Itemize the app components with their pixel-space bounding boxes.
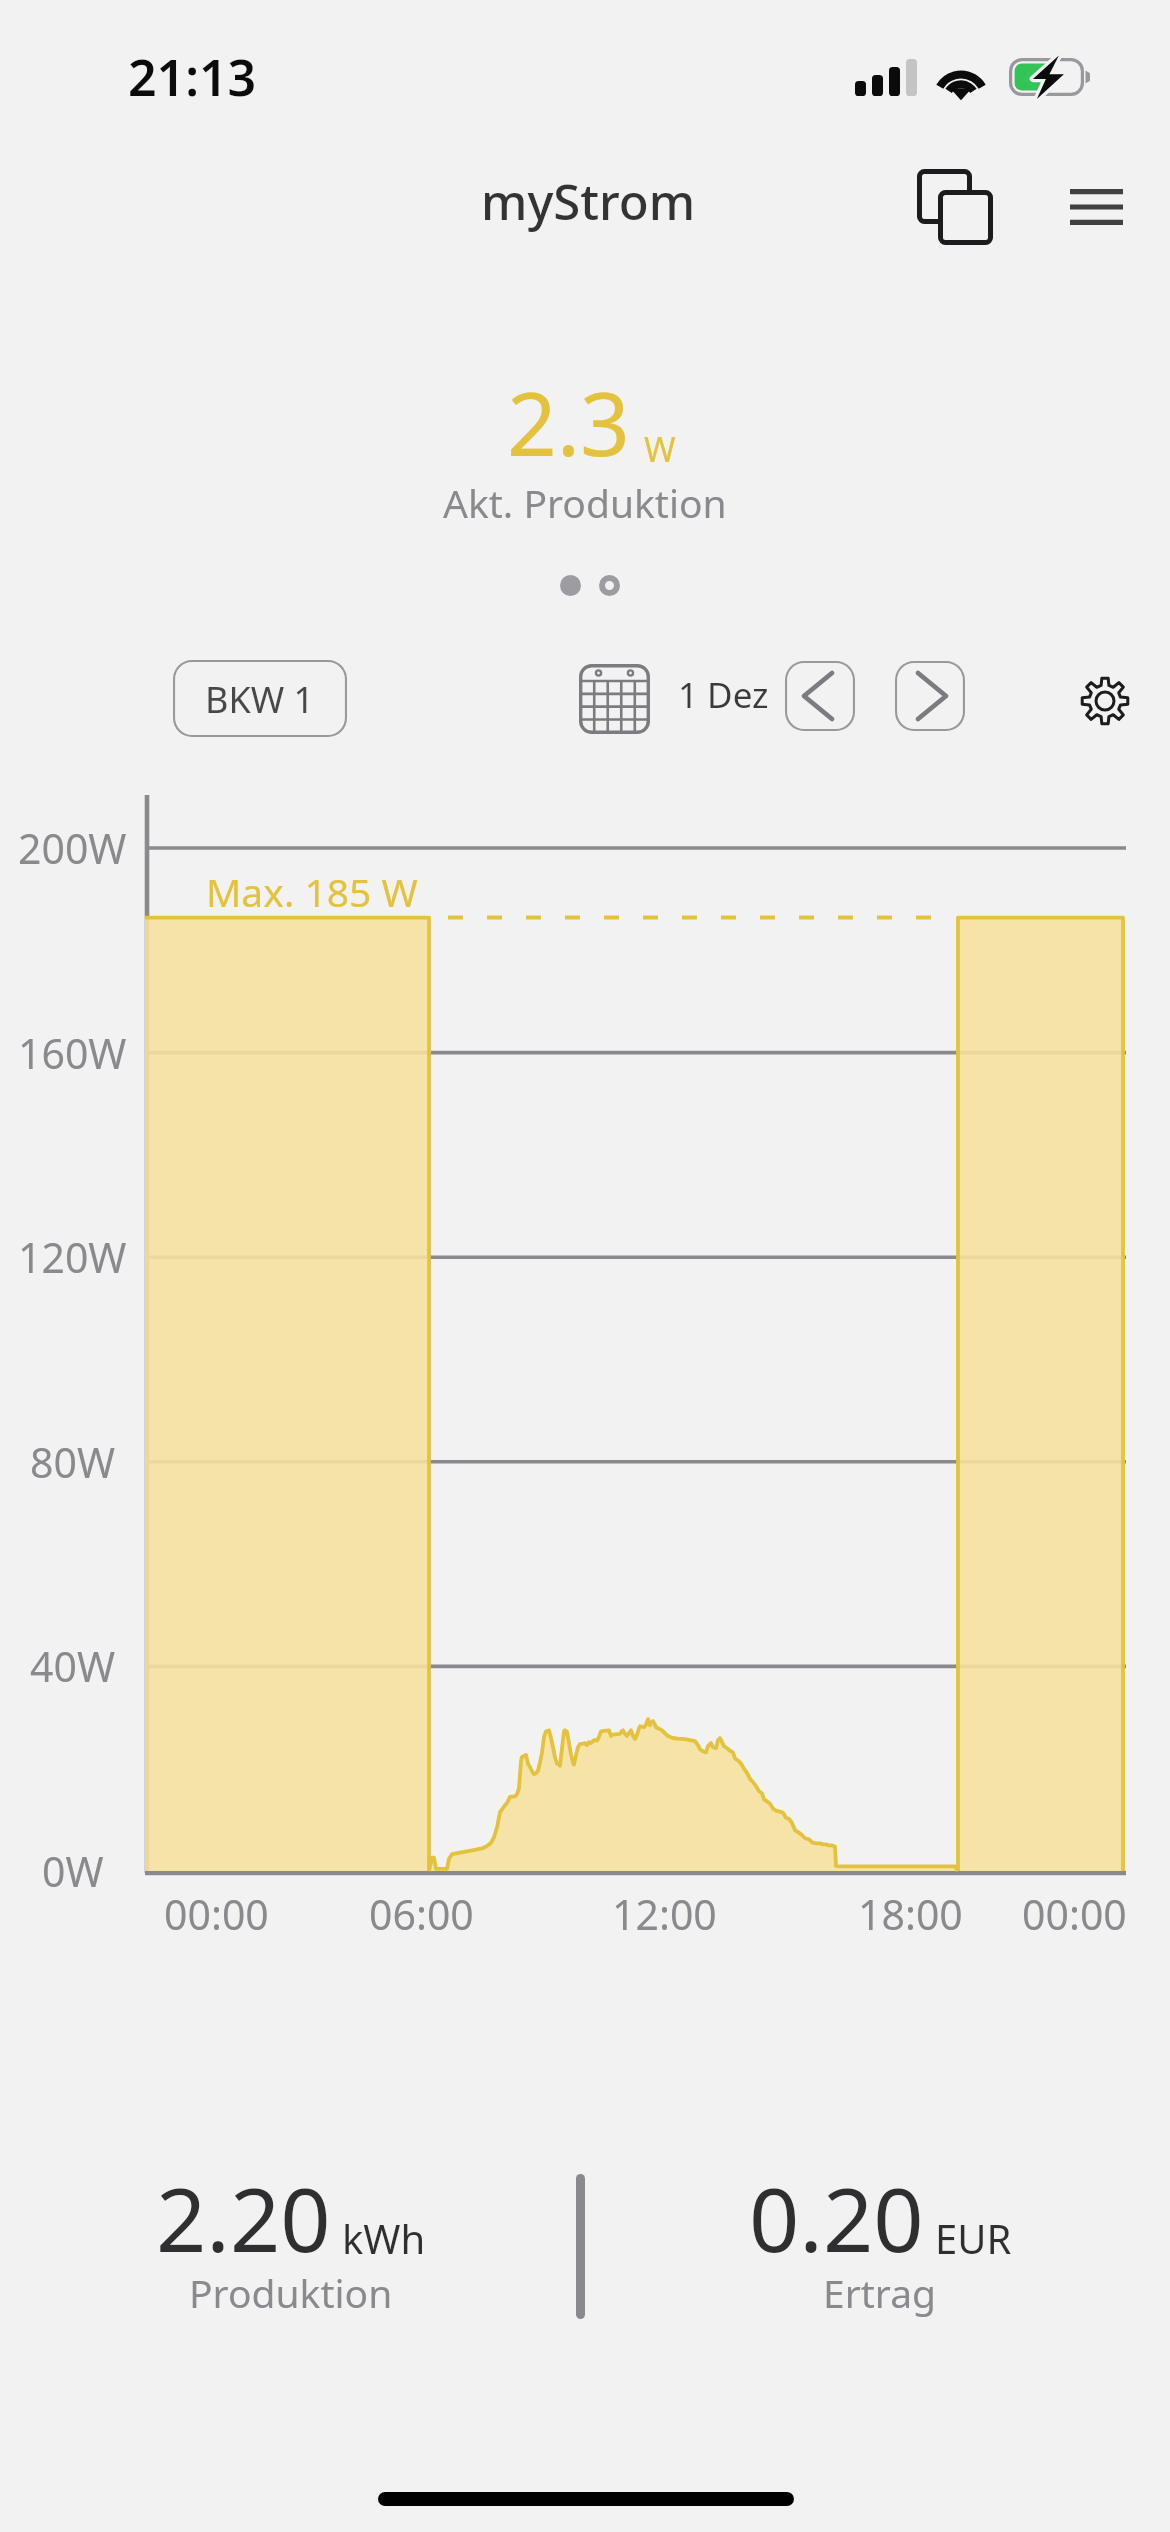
staticText: kWh [342, 2211, 426, 2265]
button[interactable]: BKW 1 [173, 660, 347, 737]
staticText: 06:00 [369, 1886, 474, 1942]
staticText: EUR [935, 2211, 1012, 2265]
staticText: 18:00 [858, 1886, 963, 1942]
button[interactable]: 1 Dez [579, 661, 769, 737]
staticText: 0W [42, 1843, 104, 1899]
button[interactable]: Settings [1063, 659, 1147, 743]
button[interactable]: Switch device [894, 147, 1016, 267]
staticText: 160W [18, 1025, 127, 1081]
staticText: 1 Dez [678, 671, 769, 719]
staticText: 21:13 [128, 43, 257, 111]
staticText: BKW 1 [205, 675, 315, 724]
button[interactable]: Next day [895, 661, 965, 731]
staticText: 2.3 [507, 363, 630, 481]
staticText: Max. 185 W [206, 865, 418, 918]
button[interactable]: Page 1 [560, 575, 581, 596]
staticText: Produktion [189, 2266, 393, 2319]
staticText: 40W [30, 1638, 116, 1694]
staticText: 0.20 [749, 2158, 924, 2278]
staticText: 120W [18, 1229, 127, 1285]
staticText: 2.20 [156, 2158, 331, 2278]
button[interactable]: Previous day [785, 661, 855, 731]
staticText: 200W [18, 820, 127, 876]
staticText: myStrom [481, 168, 696, 235]
staticText: W [644, 426, 676, 472]
staticText: Ertrag [823, 2266, 937, 2319]
button[interactable]: Page 2 [599, 575, 620, 596]
staticText: Akt. Produktion [443, 476, 727, 529]
staticText: 12:00 [612, 1886, 717, 1942]
staticText: 00:00 [1022, 1886, 1127, 1942]
staticText: 80W [30, 1434, 116, 1490]
button[interactable]: Menu [1035, 147, 1157, 267]
staticText: 00:00 [164, 1886, 269, 1942]
